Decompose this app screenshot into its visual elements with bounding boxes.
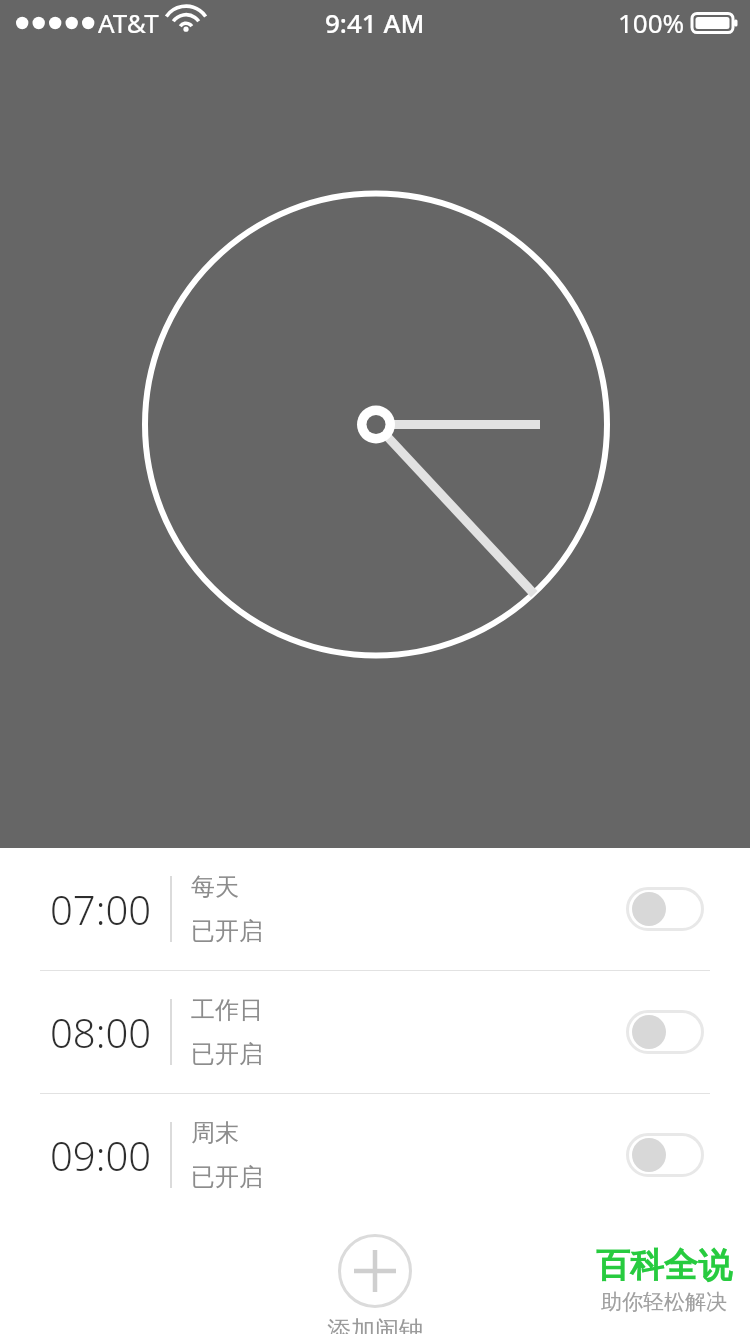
staticText: 每天 — [191, 872, 239, 902]
staticText: 9:41 AM — [325, 5, 425, 40]
button[interactable]: 添加闹钟 — [315, 1232, 435, 1334]
staticText: 已开启 — [191, 1039, 263, 1069]
staticText: 08:00 — [50, 1005, 152, 1059]
staticText: 百科全说 — [596, 1244, 732, 1287]
button[interactable]: 闹钟开关 — [618, 1002, 712, 1062]
staticText: 100% — [618, 5, 685, 40]
button[interactable]: 闹钟开关 — [618, 879, 712, 939]
button[interactable]: 闹钟开关 — [618, 1125, 712, 1185]
staticText: 已开启 — [191, 916, 263, 946]
staticText: 工作日 — [191, 995, 263, 1025]
button[interactable]: 09:00 — [0, 1094, 750, 1216]
button[interactable]: 07:00 — [0, 848, 750, 970]
staticText: 已开启 — [191, 1162, 263, 1192]
staticText: 09:00 — [50, 1128, 152, 1182]
staticText: 周末 — [191, 1118, 239, 1148]
staticText: 助你轻松解决 — [601, 1289, 727, 1315]
staticText: 添加闹钟 — [327, 1315, 423, 1334]
button[interactable]: 08:00 — [0, 971, 750, 1093]
staticText: 07:00 — [50, 882, 152, 936]
staticText: AT&T — [98, 5, 159, 40]
